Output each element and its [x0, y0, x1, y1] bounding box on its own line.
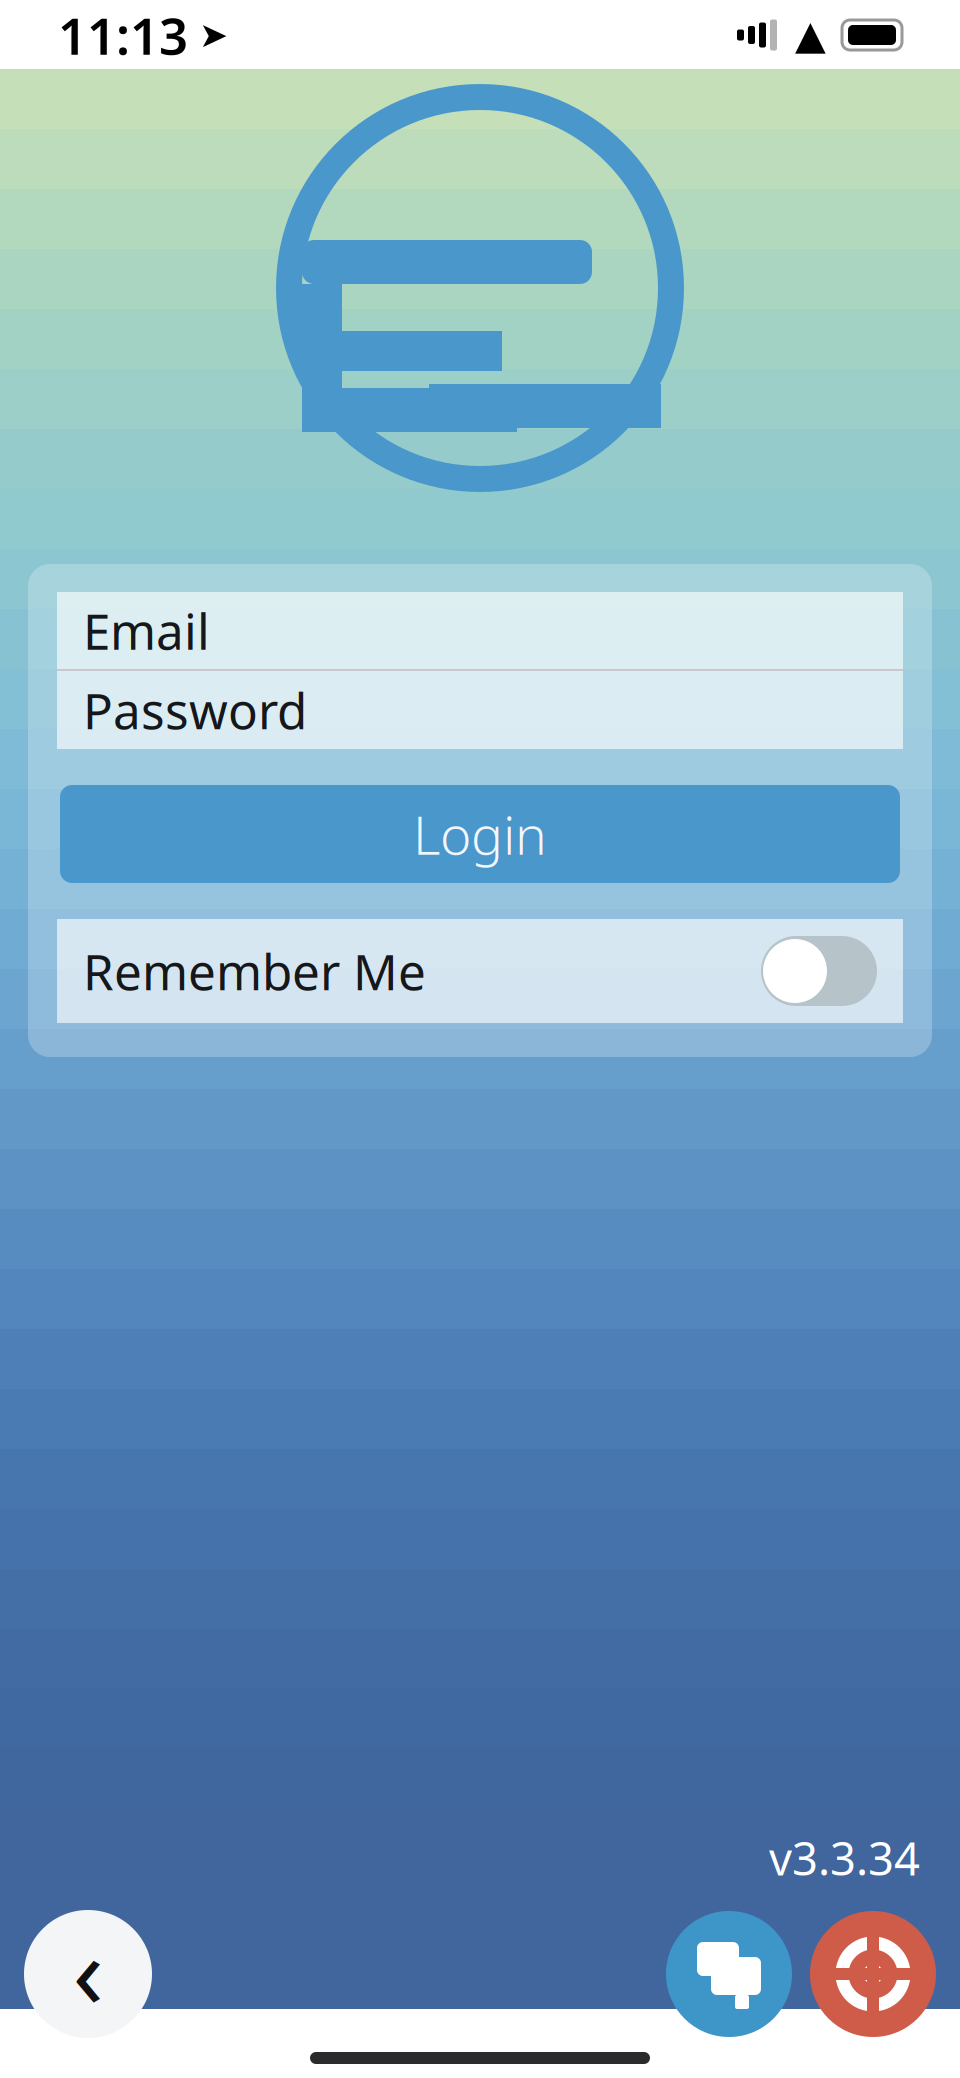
button[interactable]: Remember Me — [57, 919, 903, 1023]
staticText: Login — [413, 799, 547, 869]
button[interactable]: Back — [24, 1902, 152, 2046]
staticText: v3.3.34 — [769, 1828, 920, 1888]
staticText: Password — [83, 677, 307, 743]
button[interactable]: Login — [60, 785, 900, 883]
staticText: Email — [83, 598, 210, 663]
staticText: Remember Me — [83, 938, 426, 1004]
staticText: ‹ — [72, 1902, 103, 2036]
button[interactable]: Chat — [666, 1911, 792, 2037]
button[interactable]: Help — [810, 1911, 936, 2037]
